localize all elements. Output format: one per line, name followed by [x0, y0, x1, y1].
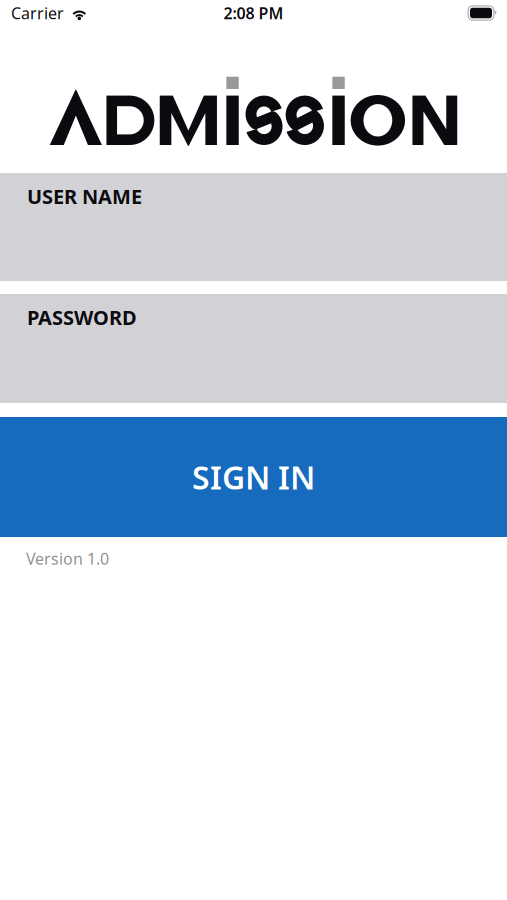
button[interactable]: SIGN IN [0, 417, 507, 537]
button[interactable]: USER NAME [0, 173, 507, 281]
staticText: SIGN IN [192, 456, 315, 498]
staticText: USER NAME [27, 183, 142, 210]
button[interactable]: PASSWORD [0, 294, 507, 403]
staticText: PASSWORD [27, 304, 137, 331]
staticText: Carrier [11, 2, 64, 24]
staticText: 2:08 PM [223, 2, 283, 24]
staticText: Version 1.0 [26, 548, 109, 569]
